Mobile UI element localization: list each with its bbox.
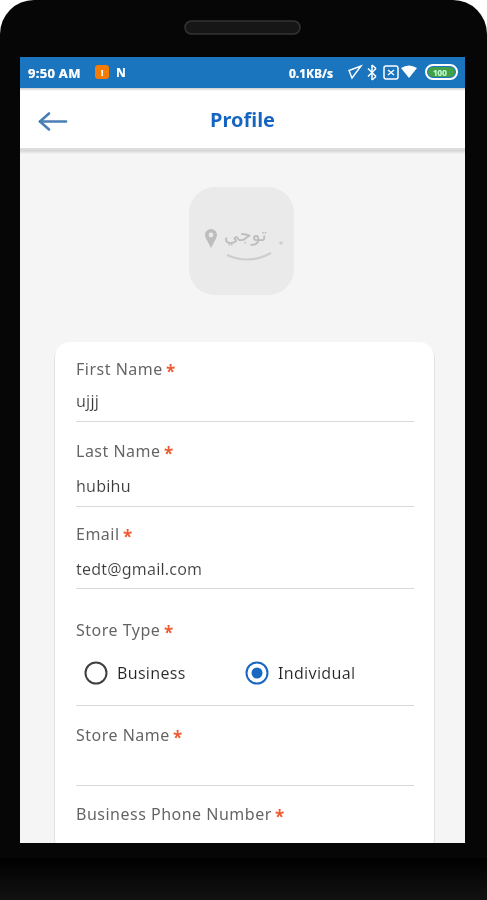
staticText: Individual: [278, 662, 356, 684]
staticText: توجي: [224, 223, 267, 245]
staticText: *: [173, 726, 183, 749]
staticText: Last Name: [76, 440, 161, 462]
staticText: 9:50 AM: [28, 64, 81, 82]
button[interactable]: [28, 107, 76, 145]
button[interactable]: Individual: [242, 651, 402, 695]
staticText: *: [123, 525, 133, 548]
staticText: hubihu: [76, 475, 131, 497]
staticText: Email: [76, 523, 120, 545]
button[interactable]: Last Name: [55, 434, 434, 508]
staticText: Profile: [210, 106, 276, 133]
staticText: tedt@gmail.com: [76, 558, 203, 580]
staticText: First Name: [76, 358, 163, 380]
staticText: 100: [433, 67, 447, 78]
staticText: ujjj: [76, 390, 100, 412]
button[interactable]: توجي: [189, 187, 294, 295]
staticText: *: [275, 805, 285, 828]
button[interactable]: First Name: [55, 352, 434, 423]
staticText: !: [101, 66, 104, 78]
staticText: *: [164, 442, 174, 465]
staticText: Business: [117, 662, 186, 684]
staticText: 0.1KB/s: [289, 65, 334, 81]
staticText: Store Type: [76, 619, 161, 641]
staticText: Business Phone Number: [76, 803, 272, 825]
button[interactable]: Business Phone Number: [55, 793, 434, 843]
button[interactable]: Store Name: [55, 715, 434, 787]
staticText: Store Name: [76, 724, 170, 746]
button[interactable]: Email: [55, 517, 434, 590]
staticText: *: [164, 621, 174, 644]
staticText: *: [166, 360, 176, 383]
button[interactable]: Business: [81, 651, 241, 695]
staticText: N: [116, 64, 126, 80]
